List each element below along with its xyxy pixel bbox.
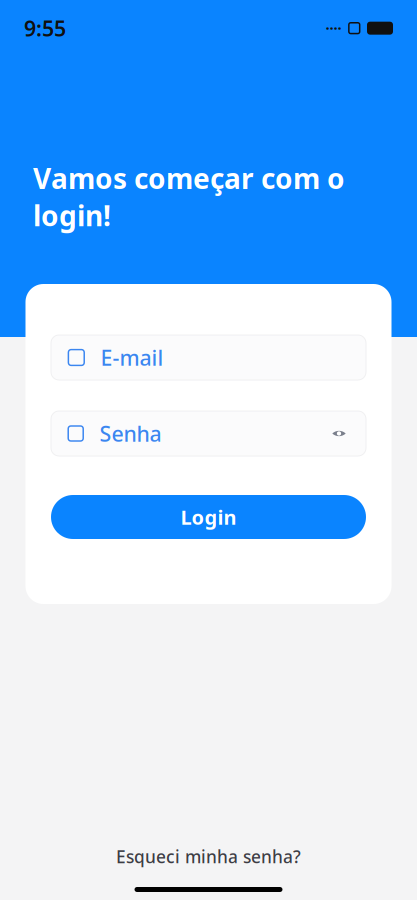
- button[interactable]: Esqueci minha senha?: [104, 839, 313, 874]
- staticText: 9:55: [24, 14, 66, 42]
- button[interactable]: Login: [51, 495, 366, 539]
- staticText: Vamos começar com o login!: [33, 160, 345, 234]
- staticText: E-mail: [101, 343, 164, 372]
- staticText: Senha: [99, 419, 161, 448]
- button[interactable]: Mostrar senha: [326, 420, 352, 446]
- staticText: Login: [180, 504, 236, 530]
- staticText: ····: [325, 18, 341, 38]
- staticText: Esqueci minha senha?: [116, 845, 301, 868]
